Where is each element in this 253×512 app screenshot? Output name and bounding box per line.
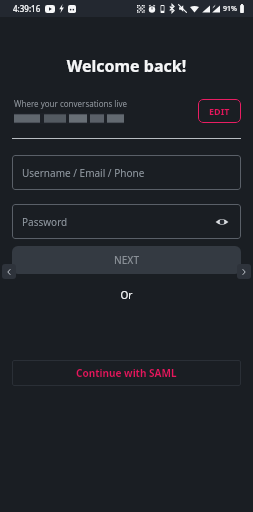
staticText: Password [22,215,213,229]
button[interactable]: Next suggestion [237,264,251,279]
button[interactable]: Previous suggestion [2,264,16,279]
staticText: 4:39:16 [13,3,41,14]
staticText: Where your conversations live [14,98,128,109]
button[interactable]: NEXT [12,246,241,274]
staticText: NEXT [114,253,140,267]
staticText: Continue with SAML [76,366,177,380]
button[interactable]: Password [12,204,241,239]
button[interactable]: Username / Email / Phone [12,155,241,190]
button[interactable]: EDIT [198,99,241,123]
staticText: EDIT [209,105,230,117]
staticText: Username / Email / Phone [22,166,231,180]
staticText: Welcome back! [0,55,253,77]
button[interactable]: Show password [213,213,231,231]
staticText: Or [0,288,253,302]
button[interactable]: Continue with SAML [12,360,241,386]
staticText: 91% [223,4,237,14]
